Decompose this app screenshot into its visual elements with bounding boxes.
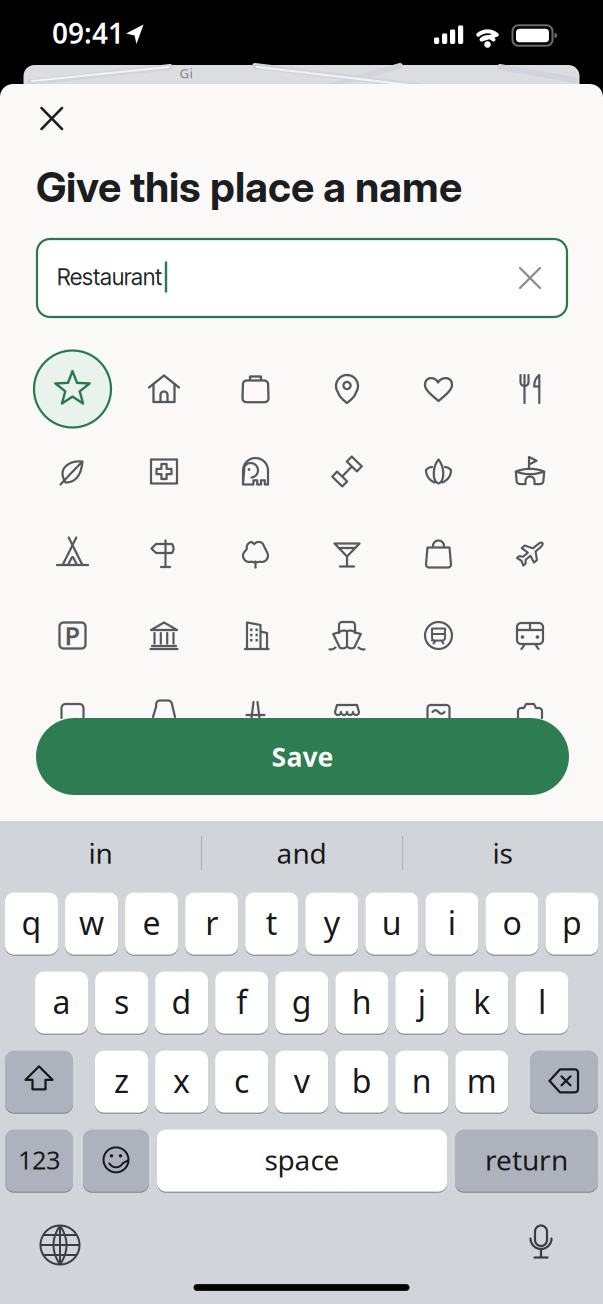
button[interactable]: Airport: [491, 515, 568, 592]
button[interactable]: i: [425, 892, 478, 955]
button[interactable]: Emoji: [83, 1129, 149, 1192]
button[interactable]: w: [65, 892, 118, 955]
button[interactable]: m: [455, 1050, 508, 1113]
button[interactable]: Dictate: [511, 1213, 571, 1273]
button[interactable]: r: [185, 892, 238, 955]
button[interactable]: Work: [217, 350, 294, 427]
staticText: e: [143, 901, 161, 944]
button[interactable]: Save: [36, 718, 569, 795]
button[interactable]: Home: [125, 350, 202, 427]
button[interactable]: p: [545, 892, 598, 955]
button[interactable]: c: [215, 1050, 268, 1113]
button[interactable]: Museum: [125, 597, 202, 674]
staticText: P: [64, 619, 80, 652]
button[interactable]: d: [155, 971, 208, 1034]
button[interactable]: Spa: [400, 433, 477, 510]
button[interactable]: o: [485, 892, 538, 955]
staticText: r: [205, 901, 218, 944]
staticText: o: [502, 901, 521, 944]
button[interactable]: Gym: [308, 433, 385, 510]
button[interactable]: a: [35, 971, 88, 1034]
button[interactable]: Camping: [34, 515, 111, 592]
button[interactable]: Shift: [5, 1050, 73, 1113]
button[interactable]: return: [455, 1129, 598, 1192]
staticText: f: [236, 980, 247, 1023]
button[interactable]: in: [5, 831, 195, 875]
button[interactable]: h: [335, 971, 388, 1034]
button[interactable]: Shopping: [400, 515, 477, 592]
button[interactable]: u: [365, 892, 418, 955]
staticText: l: [538, 980, 546, 1023]
staticText: z: [114, 1059, 129, 1102]
button[interactable]: l: [515, 971, 568, 1034]
staticText: j: [418, 980, 426, 1023]
staticText: x: [173, 1059, 190, 1102]
button[interactable]: Zoo: [217, 433, 294, 510]
button[interactable]: x: [155, 1050, 208, 1113]
button[interactable]: and: [206, 831, 396, 875]
staticText: is: [492, 834, 512, 872]
button[interactable]: n: [395, 1050, 448, 1113]
staticText: t: [266, 901, 278, 944]
button[interactable]: j: [395, 971, 448, 1034]
staticText: d: [172, 980, 192, 1023]
staticText: y: [324, 901, 340, 944]
button[interactable]: Place: [308, 350, 385, 427]
button[interactable]: t: [245, 892, 298, 955]
button[interactable]: s: [95, 971, 148, 1034]
button[interactable]: k: [455, 971, 508, 1034]
button[interactable]: v: [275, 1050, 328, 1113]
button[interactable]: Bar: [308, 515, 385, 592]
staticText: p: [562, 901, 582, 944]
button[interactable]: Port: [308, 597, 385, 674]
staticText: i: [448, 901, 456, 944]
button[interactable]: is: [407, 831, 597, 875]
staticText: Restaurant: [57, 263, 162, 291]
button[interactable]: Clear text: [508, 256, 552, 300]
button[interactable]: Parking: [34, 597, 111, 674]
staticText: in: [88, 834, 112, 872]
staticText: space: [264, 1141, 339, 1178]
staticText: m: [467, 1059, 497, 1102]
staticText: g: [292, 980, 312, 1023]
button[interactable]: q: [5, 892, 58, 955]
button[interactable]: Next keyboard: [30, 1215, 90, 1275]
staticText: Give this place a name: [36, 162, 462, 212]
button[interactable]: g: [275, 971, 328, 1034]
staticText: h: [352, 980, 372, 1023]
staticText: q: [21, 901, 41, 944]
staticText: a: [52, 980, 70, 1023]
staticText: v: [294, 1059, 310, 1102]
button[interactable]: Favorite category: [34, 350, 111, 427]
staticText: k: [473, 980, 490, 1023]
button[interactable]: Signpost: [125, 515, 202, 592]
button[interactable]: Train: [491, 597, 568, 674]
button[interactable]: f: [215, 971, 268, 1034]
staticText: w: [79, 901, 104, 944]
staticText: return: [485, 1141, 568, 1178]
button[interactable]: Nature: [34, 433, 111, 510]
staticText: and: [276, 834, 326, 872]
button[interactable]: b: [335, 1050, 388, 1113]
button[interactable]: y: [305, 892, 358, 955]
staticText: s: [114, 980, 129, 1023]
button[interactable]: Close: [29, 96, 73, 140]
button[interactable]: Restaurant: [491, 350, 568, 427]
staticText: n: [412, 1059, 432, 1102]
button[interactable]: Stadium: [491, 433, 568, 510]
button[interactable]: space: [157, 1129, 447, 1192]
button[interactable]: Medical: [125, 433, 202, 510]
button[interactable]: Delete: [530, 1050, 598, 1113]
button[interactable]: Park: [217, 515, 294, 592]
button[interactable]: e: [125, 892, 178, 955]
button[interactable]: City: [217, 597, 294, 674]
staticText: b: [352, 1059, 372, 1102]
staticText: c: [234, 1059, 249, 1102]
staticText: 09:41: [52, 14, 124, 52]
button[interactable]: 123: [5, 1129, 73, 1192]
staticText: u: [382, 901, 402, 944]
button[interactable]: z: [95, 1050, 148, 1113]
button[interactable]: Favorite: [400, 350, 477, 427]
button[interactable]: Metro: [400, 597, 477, 674]
staticText: 123: [18, 1143, 60, 1176]
